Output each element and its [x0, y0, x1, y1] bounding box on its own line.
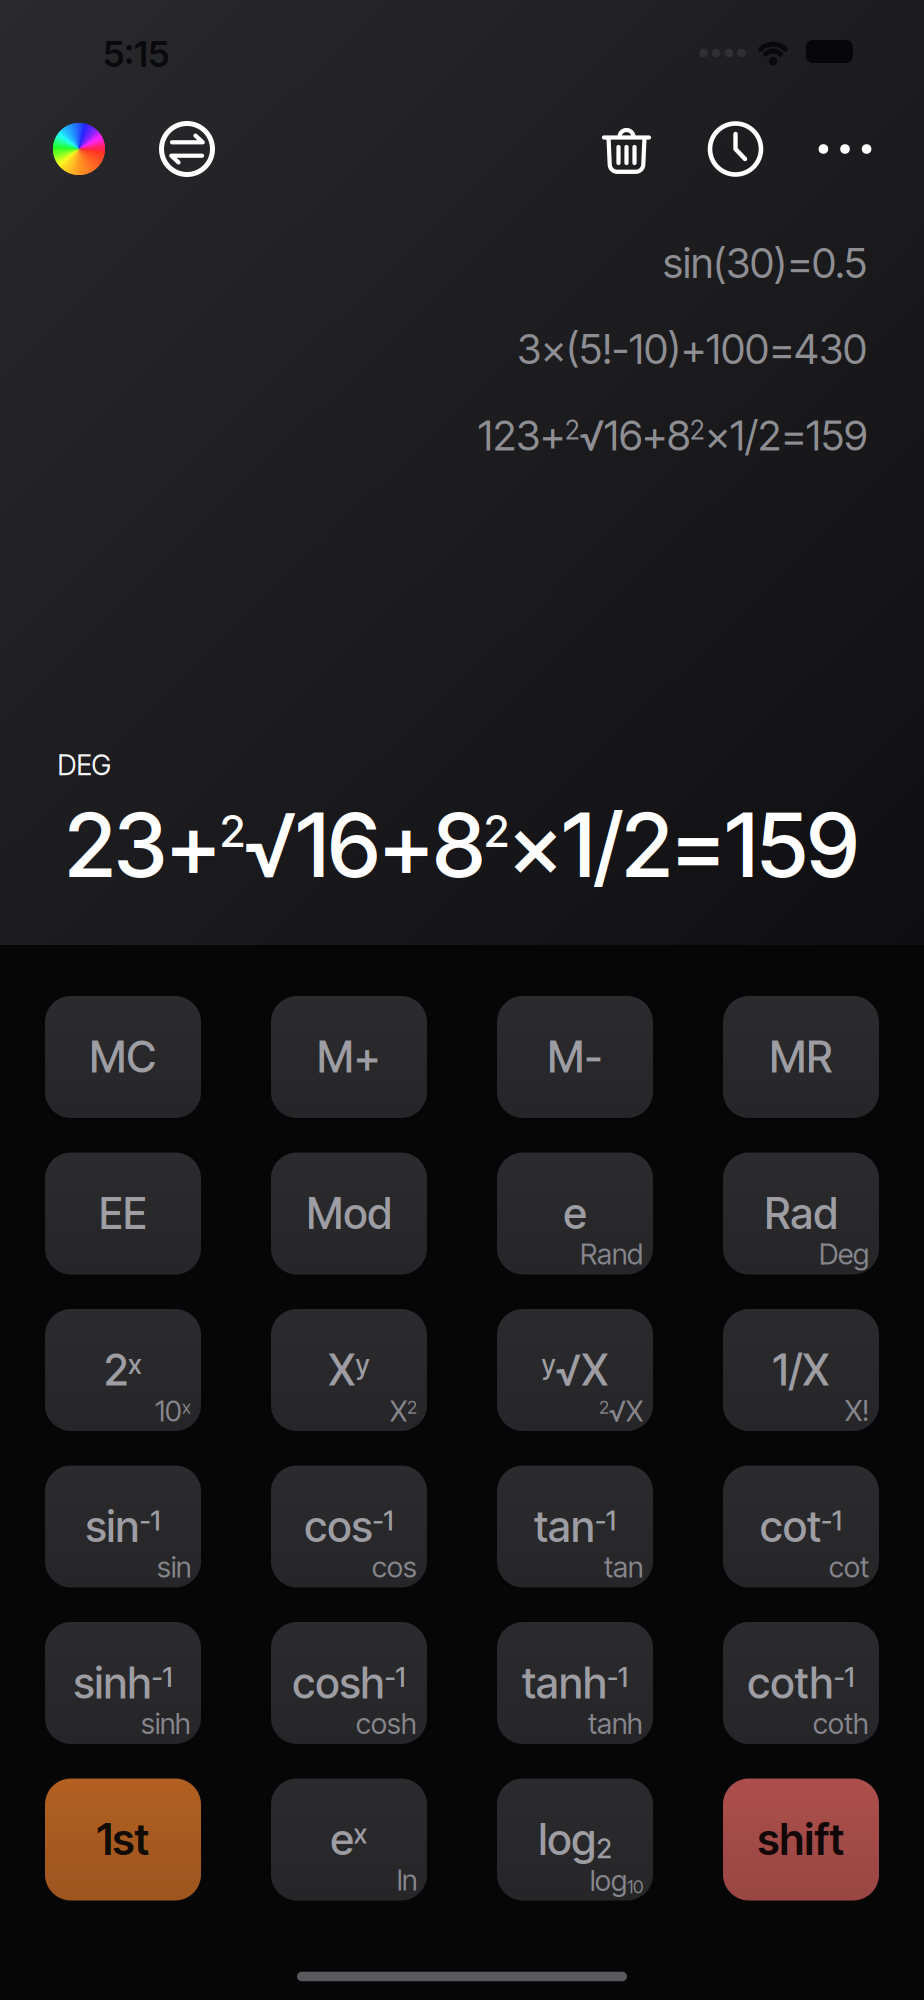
staticText: coth: [813, 1706, 869, 1741]
staticText: Deg: [819, 1237, 869, 1271]
button[interactable]: ex: [271, 1778, 427, 1900]
staticText: cot: [829, 1550, 869, 1584]
button[interactable]: Xy: [271, 1309, 427, 1431]
staticText: MC: [89, 1031, 156, 1083]
button[interactable]: tan-1: [497, 1465, 653, 1587]
staticText: sin(30)=0.5: [663, 238, 867, 288]
staticText: ln: [397, 1863, 417, 1897]
staticText: Xy: [328, 1345, 369, 1395]
staticText: log2: [538, 1814, 611, 1865]
staticText: M-: [547, 1031, 602, 1083]
button[interactable]: sinh-1: [45, 1622, 201, 1744]
staticText: 10x: [155, 1394, 191, 1428]
button[interactable]: Theme: [53, 123, 105, 175]
staticText: 3×(5!-10)+100=430: [517, 324, 867, 374]
button[interactable]: History: [707, 121, 763, 177]
staticText: 1/X: [772, 1344, 829, 1396]
button[interactable]: More: [819, 123, 871, 175]
staticText: 2x: [104, 1345, 142, 1395]
staticText: shift: [757, 1814, 844, 1865]
staticText: cos: [372, 1550, 417, 1584]
staticText: Mod: [306, 1188, 391, 1239]
button[interactable]: MC: [45, 996, 201, 1118]
staticText: DEG: [57, 748, 110, 782]
staticText: tan: [604, 1550, 643, 1584]
staticText: X!: [845, 1393, 869, 1428]
staticText: Rad: [764, 1188, 837, 1239]
staticText: cot-1: [760, 1501, 842, 1552]
staticText: coth-1: [747, 1658, 854, 1708]
staticText: y√X: [541, 1345, 608, 1395]
staticText: sinh-1: [73, 1658, 172, 1708]
staticText: EE: [99, 1188, 147, 1239]
button[interactable]: y√X: [497, 1309, 653, 1431]
staticText: sin: [157, 1550, 191, 1584]
button[interactable]: tanh-1: [497, 1622, 653, 1744]
button[interactable]: sin-1: [45, 1465, 201, 1587]
button[interactable]: 1/X: [723, 1309, 879, 1431]
staticText: X2: [390, 1394, 417, 1428]
button[interactable]: e: [497, 1152, 653, 1274]
button[interactable]: 2x: [45, 1309, 201, 1431]
button[interactable]: cos-1: [271, 1465, 427, 1587]
staticText: 1st: [96, 1814, 149, 1865]
staticText: cosh-1: [292, 1658, 405, 1708]
staticText: cosh: [356, 1706, 417, 1741]
button[interactable]: Rad: [723, 1152, 879, 1274]
staticText: ex: [330, 1814, 367, 1865]
button[interactable]: cot-1: [723, 1465, 879, 1587]
staticText: e: [563, 1188, 586, 1239]
button[interactable]: Clear history: [602, 123, 651, 175]
staticText: 5:15: [103, 32, 169, 76]
staticText: sin-1: [85, 1501, 160, 1552]
button[interactable]: cosh-1: [271, 1622, 427, 1744]
staticText: Rand: [580, 1237, 643, 1271]
staticText: M+: [317, 1031, 381, 1083]
button[interactable]: coth-1: [723, 1622, 879, 1744]
staticText: tan-1: [534, 1501, 616, 1552]
button[interactable]: Converter: [159, 121, 215, 177]
staticText: sinh: [141, 1706, 191, 1741]
staticText: 123+2√16+82×1/2=159: [478, 411, 867, 460]
button[interactable]: M-: [497, 996, 653, 1118]
staticText: tanh: [588, 1706, 643, 1741]
button[interactable]: Mod: [271, 1152, 427, 1274]
button[interactable]: log2: [497, 1778, 653, 1900]
staticText: 23+2√16+82×1/2=159: [65, 793, 859, 897]
button[interactable]: EE: [45, 1152, 201, 1274]
staticText: 2√X: [599, 1394, 643, 1428]
staticText: MR: [769, 1031, 832, 1083]
staticText: log10: [590, 1864, 643, 1897]
button[interactable]: 1st: [45, 1778, 201, 1900]
button[interactable]: M+: [271, 996, 427, 1118]
staticText: cos-1: [304, 1501, 393, 1552]
button[interactable]: MR: [723, 996, 879, 1118]
button[interactable]: shift: [723, 1778, 879, 1900]
staticText: tanh-1: [522, 1658, 628, 1708]
